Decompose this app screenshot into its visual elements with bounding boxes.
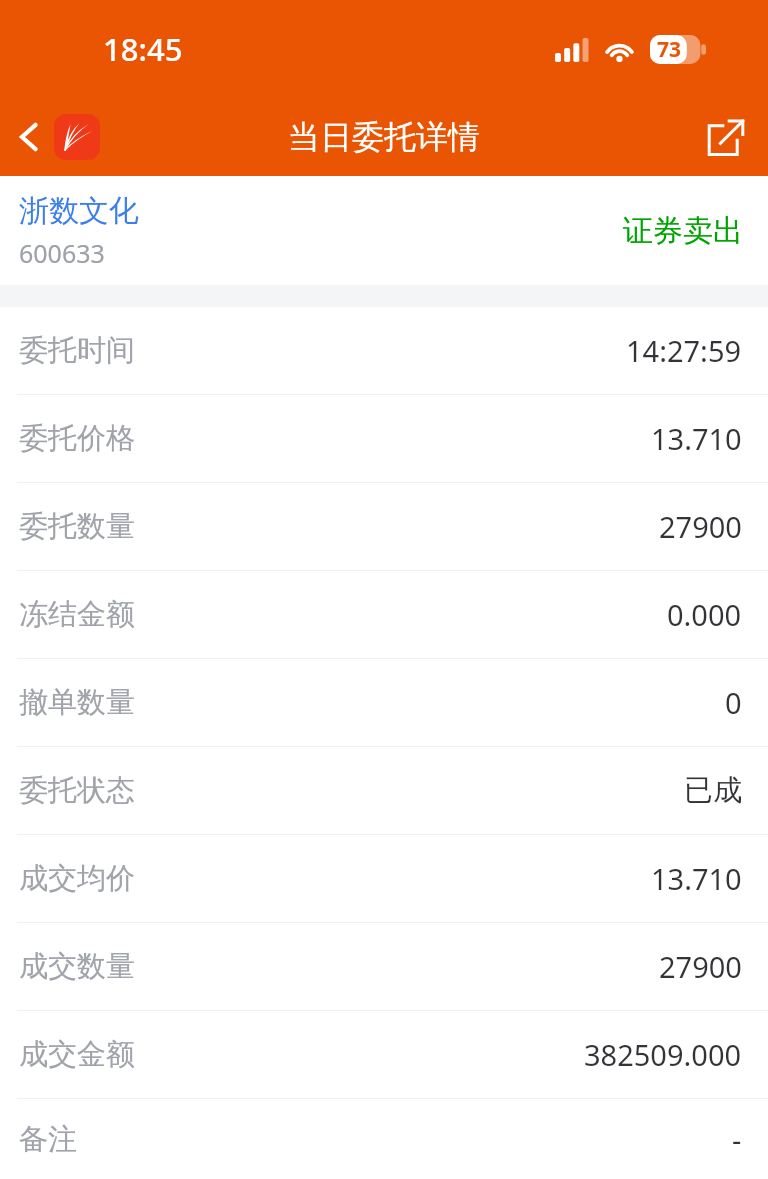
staticText: 委托时间 [19,332,135,369]
staticText: 浙数文化 [19,192,139,230]
staticText: 已成 [684,772,742,809]
staticText: 委托数量 [19,508,135,545]
button[interactable]: 备注 [0,1098,768,1179]
staticText: 382509.000 [584,1035,742,1074]
staticText: 27900 [659,947,742,986]
staticText: 27900 [659,507,742,546]
staticText: 14:27:59 [626,331,742,370]
button[interactable]: 委托数量 [0,482,768,570]
staticText: 备注 [19,1121,77,1158]
button[interactable]: 成交金额 [0,1010,768,1098]
staticText: - [732,1120,742,1159]
button[interactable]: Back [0,108,112,166]
staticText: 成交数量 [19,948,135,985]
staticText: 73 [657,35,682,64]
staticText: 成交均价 [19,860,135,897]
staticText: 0 [725,683,742,722]
staticText: 撤单数量 [19,684,135,721]
button[interactable]: 冻结金额 [0,570,768,658]
button[interactable]: Share [688,107,768,167]
button[interactable]: 委托价格 [0,394,768,482]
button[interactable]: 委托状态 [0,746,768,834]
staticText: 证券卖出 [623,212,743,250]
button[interactable]: 撤单数量 [0,658,768,746]
staticText: 成交金额 [19,1036,135,1073]
button[interactable]: 浙数文化 [0,176,768,285]
staticText: 13.710 [651,419,742,458]
staticText: 委托价格 [19,420,135,457]
staticText: 0.000 [667,595,742,634]
button[interactable]: 委托时间 [0,307,768,394]
staticText: 当日委托详情 [288,117,480,157]
staticText: 13.710 [651,859,742,898]
button[interactable]: 成交数量 [0,922,768,1010]
staticText: 冻结金额 [19,596,135,633]
staticText: 18:45 [103,28,183,70]
staticText: 委托状态 [19,772,135,809]
staticText: 600633 [19,236,105,270]
button[interactable]: 成交均价 [0,834,768,922]
